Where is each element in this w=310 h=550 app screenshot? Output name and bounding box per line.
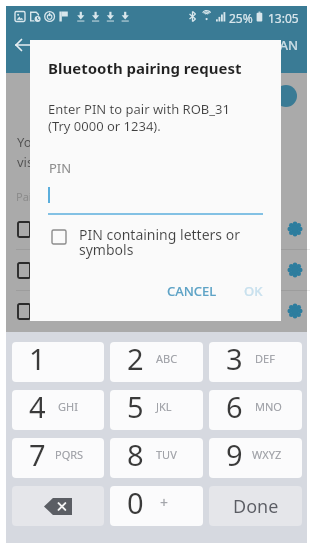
staticText: 0 xyxy=(127,486,144,522)
staticText: TUV xyxy=(156,447,177,462)
staticText: ABC xyxy=(156,351,178,366)
staticText: Done xyxy=(233,494,279,519)
button[interactable]: 4 xyxy=(12,390,104,430)
staticText: WXYZ xyxy=(252,447,282,462)
staticText: CANCEL xyxy=(167,282,217,300)
button[interactable]: Done xyxy=(209,486,302,526)
button[interactable]: 1 xyxy=(12,342,104,382)
staticText: 6 xyxy=(226,390,243,426)
button[interactable]: 5 xyxy=(110,390,203,430)
staticText: 5 xyxy=(127,390,144,426)
staticText: OK xyxy=(244,282,263,300)
button[interactable]: OK xyxy=(236,276,271,306)
staticText: GHI xyxy=(58,399,78,414)
staticText: MNO xyxy=(255,399,282,414)
button[interactable]: Device settings xyxy=(6,210,307,248)
staticText: 2 xyxy=(127,342,144,378)
staticText: PQRS xyxy=(55,447,84,462)
staticText: 1 xyxy=(29,342,46,378)
staticText: JKL xyxy=(156,399,172,414)
staticText: Bluetooth pairing request xyxy=(48,58,242,78)
button[interactable]: PIN containing letters or symbols xyxy=(51,225,264,259)
button[interactable]: Navigate up xyxy=(10,30,40,60)
staticText: Your device is currently visible to near… xyxy=(17,133,169,171)
staticText: Paired devices xyxy=(16,189,90,204)
button[interactable]: Device settings xyxy=(6,292,307,330)
staticText: DEF xyxy=(255,351,275,366)
staticText: Enter PIN to pair with ROB_31 (Try 0000 … xyxy=(48,100,230,135)
button[interactable]: 8 xyxy=(110,438,203,478)
staticText: 25% xyxy=(229,10,253,26)
button[interactable]: 2 xyxy=(110,342,203,382)
button[interactable]: Device settings xyxy=(6,251,307,289)
button[interactable]: Device settings xyxy=(284,218,306,240)
staticText: SCAN xyxy=(264,36,299,54)
staticText: 4 xyxy=(29,390,46,426)
button[interactable]: Device options xyxy=(275,85,297,107)
button[interactable]: 6 xyxy=(209,390,302,430)
button[interactable]: 0 xyxy=(110,486,203,526)
staticText: 8 xyxy=(127,438,144,474)
staticText: PIN containing letters or symbols xyxy=(79,225,240,259)
staticText: + xyxy=(160,493,169,512)
button[interactable]: 9 xyxy=(209,438,302,478)
staticText: 9 xyxy=(226,438,243,474)
staticText: 7 xyxy=(29,438,46,474)
button[interactable]: CANCEL xyxy=(159,276,225,306)
staticText: 13:05 xyxy=(268,10,299,26)
button[interactable]: Device settings xyxy=(284,300,306,322)
button[interactable]: Backspace xyxy=(12,486,104,526)
button[interactable]: 7 xyxy=(12,438,104,478)
staticText: PIN xyxy=(49,159,72,177)
staticText: 3 xyxy=(226,342,243,378)
button[interactable]: 3 xyxy=(209,342,302,382)
button[interactable]: SCAN xyxy=(256,32,307,58)
button[interactable]: Device settings xyxy=(284,259,306,281)
